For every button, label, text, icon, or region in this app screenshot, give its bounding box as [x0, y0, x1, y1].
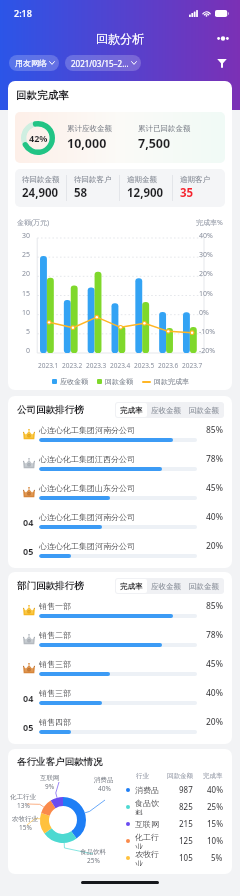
button[interactable]: 应收金额: [147, 579, 185, 593]
staticText: 部门回款排行榜: [17, 580, 84, 592]
staticText: 待回款金额: [22, 175, 60, 184]
staticText: 05: [23, 721, 34, 733]
staticText: 各行业客户回款情况: [17, 756, 103, 768]
staticText: 40%: [207, 784, 223, 795]
button[interactable]: Filter: [213, 54, 231, 72]
staticText: 销售一部: [39, 601, 71, 611]
staticText: 心连心化工集团江西分公司: [39, 454, 135, 464]
staticText: 公司回款排行榜: [17, 404, 84, 416]
button[interactable]: 完成率: [116, 403, 147, 417]
staticText: 化工行业: [10, 793, 36, 801]
button[interactable]: More options: [212, 27, 234, 49]
staticText: 40%: [206, 687, 223, 699]
staticText: 销售三部: [39, 659, 71, 669]
staticText: 125: [179, 835, 193, 846]
staticText: -10%: [199, 327, 216, 337]
staticText: 回款金额: [189, 406, 219, 415]
staticText: 2023.2: [62, 361, 83, 370]
staticText: 行业: [136, 772, 163, 780]
staticText: 15%: [207, 818, 223, 829]
button[interactable]: 完成率: [116, 579, 147, 593]
staticText: 04: [23, 692, 34, 704]
staticText: 78%: [206, 629, 223, 641]
staticText: 13%: [17, 801, 30, 810]
staticText: 15: [22, 289, 31, 299]
staticText: 12,900: [127, 185, 164, 201]
button[interactable]: 回款金额: [185, 403, 223, 417]
button[interactable]: 05: [8, 712, 232, 741]
button[interactable]: 04: [8, 507, 232, 536]
button[interactable]: 销售一部: [8, 596, 232, 625]
staticText: 回款金额: [167, 772, 193, 780]
staticText: 化工行业: [135, 832, 163, 849]
button[interactable]: 2021/03/15–2…: [65, 55, 141, 71]
staticText: 累计已回款金额: [138, 124, 191, 133]
button[interactable]: 回款金额: [185, 579, 223, 593]
staticText: 10%: [199, 289, 213, 299]
staticText: 食品饮料: [80, 848, 106, 856]
staticText: 回款分析: [96, 31, 144, 46]
staticText: 2021/03/15–2…: [71, 58, 129, 69]
staticText: 40%: [199, 231, 213, 241]
staticText: 35: [180, 185, 194, 201]
staticText: 应收金额: [60, 377, 88, 386]
staticText: 2023.3: [86, 361, 107, 370]
staticText: 20%: [206, 540, 223, 552]
staticText: 0%: [199, 308, 209, 318]
staticText: 20%: [199, 269, 213, 279]
staticText: 825: [179, 801, 193, 812]
staticText: 987: [179, 784, 193, 795]
staticText: 应收金额: [151, 406, 181, 415]
staticText: 05: [23, 545, 34, 557]
staticText: 45%: [206, 482, 223, 494]
button[interactable]: 用友网络: [9, 55, 59, 71]
staticText: 回款金额: [105, 377, 133, 386]
button[interactable]: 销售三部: [8, 654, 232, 683]
staticText: 10,000: [67, 135, 107, 152]
staticText: 完成率: [203, 772, 223, 780]
staticText: 2023.6: [158, 361, 179, 370]
staticText: 7,500: [138, 135, 171, 152]
staticText: 30%: [199, 250, 213, 260]
staticText: 30: [22, 231, 31, 241]
staticText: 04: [23, 516, 34, 528]
staticText: 2023.5: [134, 361, 155, 370]
button[interactable]: 心连心化工集团山东分公司: [8, 478, 232, 507]
staticText: 食品饮料: [135, 798, 163, 815]
button[interactable]: 销售二部: [8, 625, 232, 654]
staticText: 完成率: [120, 406, 143, 415]
button[interactable]: 04: [8, 683, 232, 712]
staticText: 销售二部: [39, 630, 71, 640]
staticText: 完成率%: [196, 218, 223, 228]
staticText: 42%: [29, 132, 48, 144]
staticText: 25%: [207, 801, 223, 812]
staticText: 40%: [206, 511, 223, 523]
staticText: 待回款客户: [74, 175, 112, 184]
staticText: 215: [179, 818, 193, 829]
staticText: 回款完成率: [16, 89, 69, 102]
staticText: 2:18: [14, 7, 32, 19]
staticText: 25: [22, 250, 31, 260]
button[interactable]: 心连心化工集团江西分公司: [8, 449, 232, 478]
button[interactable]: 05: [8, 536, 232, 565]
staticText: 9%: [45, 782, 55, 791]
staticText: 2023.1: [38, 361, 59, 370]
staticText: 2023.4: [110, 361, 131, 370]
staticText: 销售四部: [39, 717, 71, 727]
staticText: 消费品: [94, 776, 114, 784]
staticText: 40%: [98, 784, 111, 793]
button[interactable]: 心连心化工集团河南分公司: [8, 420, 232, 449]
staticText: 农牧行业: [12, 815, 38, 823]
staticText: 5%: [211, 852, 223, 863]
staticText: 10%: [207, 835, 223, 846]
staticText: 回款金额: [189, 582, 219, 591]
staticText: 105: [179, 852, 193, 863]
staticText: 85%: [206, 424, 223, 436]
button[interactable]: 应收金额: [147, 403, 185, 417]
staticText: 心连心化工集团河南分公司: [39, 541, 135, 551]
staticText: 累计应收金额: [67, 124, 112, 133]
staticText: 15%: [19, 823, 32, 832]
staticText: 农牧行业: [135, 849, 163, 866]
staticText: 45%: [206, 658, 223, 670]
staticText: 心连心化工集团山东分公司: [39, 483, 135, 493]
